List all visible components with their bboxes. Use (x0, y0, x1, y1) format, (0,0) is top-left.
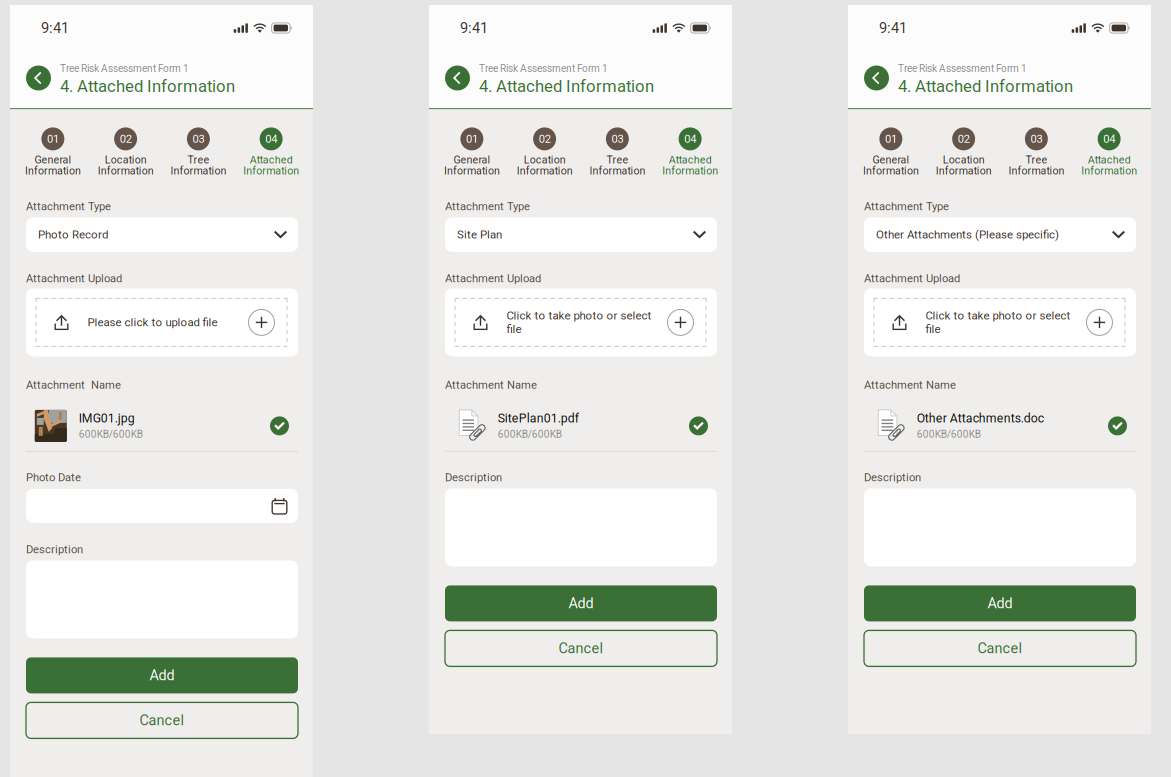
staticText: Attachment Type (445, 200, 530, 213)
staticText: Other Attachments (Please specific) (876, 228, 1059, 241)
staticText: 600KB/600KB (79, 428, 143, 440)
staticText: Attachment Type (864, 200, 949, 213)
staticText: Add (568, 595, 593, 612)
staticText: 03 (611, 132, 623, 145)
staticText: Tree (606, 154, 628, 166)
staticText: Tree Risk Assessment Form 1 (60, 63, 189, 74)
button[interactable]: 02 (89, 127, 162, 176)
staticText: Information (936, 165, 992, 177)
button[interactable]: Add (445, 585, 717, 621)
staticText: Information (1008, 165, 1064, 177)
staticText: Site Plan (457, 228, 502, 241)
button[interactable]: Cancel (26, 702, 298, 738)
staticText: Tree (187, 154, 209, 166)
staticText: Information (1081, 165, 1137, 177)
staticText: Tree (1025, 154, 1047, 166)
button[interactable]: Please click to upload file (26, 288, 298, 356)
staticText: Attachment Name (864, 378, 956, 391)
staticText: Click to take photo or select file (925, 309, 1070, 336)
button[interactable]: Photo Record (26, 217, 298, 252)
staticText: 04 (1103, 132, 1115, 145)
staticText: Information (662, 165, 718, 177)
staticText: 9:41 (41, 19, 69, 37)
button[interactable]: Other Attachments (Please specific) (864, 217, 1136, 252)
staticText: IMG01.jpg (79, 411, 135, 425)
staticText: Attached (669, 154, 712, 166)
button[interactable]: 02 (508, 127, 581, 176)
staticText: 02 (539, 132, 551, 145)
button[interactable]: 04 (1073, 127, 1146, 176)
staticText: Cancel (977, 640, 1022, 657)
staticText: General (34, 154, 71, 166)
button[interactable]: 03 (581, 127, 654, 176)
staticText: 01 (885, 132, 897, 145)
staticText: Cancel (558, 640, 603, 657)
staticText: 04 (684, 132, 696, 145)
staticText: General (453, 154, 490, 166)
staticText: Attached (250, 154, 293, 166)
staticText: Description (445, 471, 502, 484)
staticText: 600KB/600KB (917, 428, 981, 440)
staticText: Add (987, 595, 1012, 612)
staticText: Photo Record (38, 228, 108, 241)
staticText: Click to take photo or select file (506, 309, 651, 336)
staticText: Information (863, 165, 919, 177)
staticText: Location (105, 154, 147, 166)
staticText: Attached (1088, 154, 1131, 166)
staticText: Attachment Upload (864, 272, 960, 285)
staticText: Tree Risk Assessment Form 1 (479, 63, 608, 74)
staticText: Tree Risk Assessment Form 1 (898, 63, 1027, 74)
staticText: Information (170, 165, 226, 177)
staticText: Attachment Name (445, 378, 537, 391)
staticText: Description (864, 471, 921, 484)
staticText: Please click to upload file (87, 316, 217, 329)
staticText: 600KB/600KB (498, 428, 562, 440)
staticText: 9:41 (460, 19, 488, 37)
button[interactable]: Click to take photo or select file (445, 288, 717, 356)
button[interactable]: Site Plan (445, 217, 717, 252)
button[interactable]: Cancel (445, 630, 717, 666)
staticText: 03 (192, 132, 204, 145)
staticText: 01 (466, 132, 478, 145)
staticText: Cancel (139, 712, 184, 729)
staticText: Add (149, 667, 174, 684)
staticText: 02 (958, 132, 970, 145)
staticText: 04 (265, 132, 277, 145)
button[interactable]: 04 (235, 127, 308, 176)
button[interactable]: Back (26, 65, 51, 90)
staticText: 4. Attached Information (479, 76, 654, 96)
staticText: Attachment Upload (445, 272, 541, 285)
button[interactable]: 02 (927, 127, 1000, 176)
staticText: Attachment Type (26, 200, 111, 213)
button[interactable]: Add (864, 585, 1136, 621)
staticText: 9:41 (879, 19, 907, 37)
staticText: 4. Attached Information (60, 76, 235, 96)
staticText: Information (98, 165, 154, 177)
button[interactable]: Back (445, 65, 470, 90)
staticText: Location (943, 154, 985, 166)
staticText: Description (26, 543, 83, 556)
staticText: Information (243, 165, 299, 177)
button[interactable]: 04 (654, 127, 727, 176)
button[interactable]: Cancel (864, 630, 1136, 666)
button[interactable]: 01 (16, 127, 89, 176)
staticText: Information (517, 165, 573, 177)
button[interactable]: Click to take photo or select file (864, 288, 1136, 356)
button[interactable]: Back (864, 65, 889, 90)
staticText: Information (444, 165, 500, 177)
button[interactable]: 03 (1000, 127, 1073, 176)
staticText: 03 (1030, 132, 1042, 145)
button[interactable]: Photo date (26, 489, 298, 523)
button[interactable]: 03 (162, 127, 235, 176)
button[interactable]: Add (26, 657, 298, 693)
button[interactable]: 01 (854, 127, 927, 176)
staticText: General (872, 154, 909, 166)
staticText: Other Attachments.doc (917, 411, 1044, 425)
staticText: Attachment Name (26, 378, 121, 391)
button[interactable]: 01 (435, 127, 508, 176)
staticText: Information (589, 165, 645, 177)
staticText: 02 (120, 132, 132, 145)
